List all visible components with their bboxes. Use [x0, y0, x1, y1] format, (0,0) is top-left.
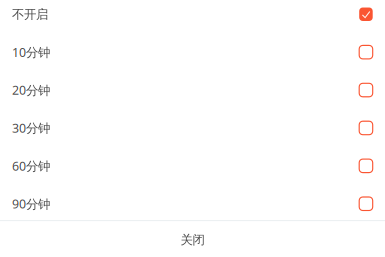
- button[interactable]: 关闭: [0, 221, 385, 256]
- button[interactable]: 20分钟: [0, 71, 385, 109]
- button[interactable]: 30分钟: [0, 109, 385, 147]
- staticText: 10分钟: [12, 44, 50, 61]
- staticText: 不开启: [12, 6, 48, 22]
- button[interactable]: 不开启: [0, 0, 385, 33]
- button[interactable]: 10分钟: [0, 33, 385, 71]
- button[interactable]: 60分钟: [0, 147, 385, 185]
- staticText: 60分钟: [12, 157, 50, 174]
- button[interactable]: 90分钟: [0, 185, 385, 223]
- staticText: 关闭: [180, 232, 204, 248]
- staticText: 20分钟: [12, 82, 50, 98]
- staticText: 30分钟: [12, 119, 50, 136]
- staticText: 90分钟: [12, 195, 50, 212]
